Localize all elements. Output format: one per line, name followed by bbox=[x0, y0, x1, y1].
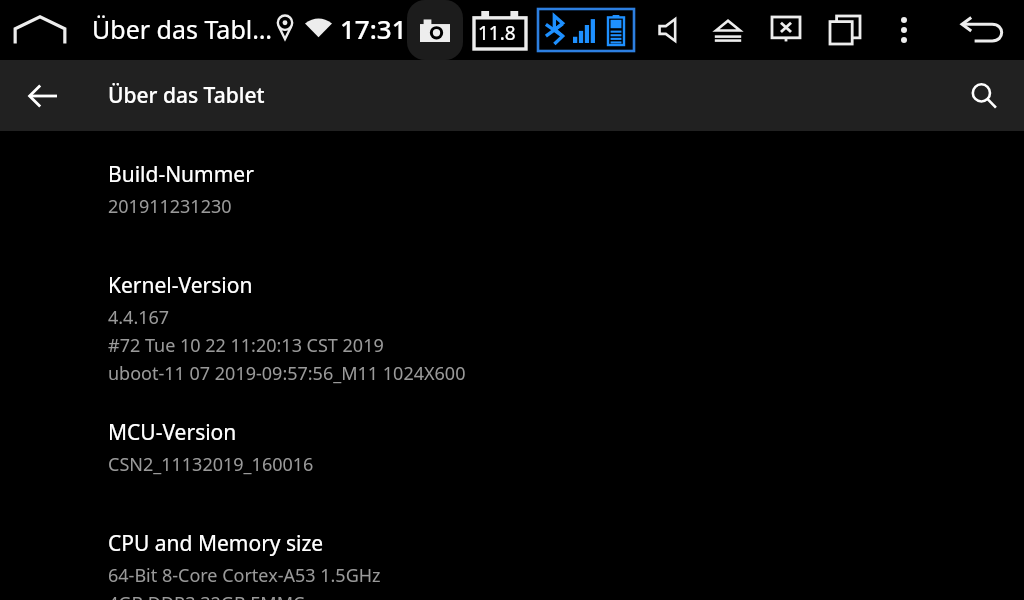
button[interactable]: Kernel-Version bbox=[0, 271, 1024, 386]
staticText: Über das Tabl… bbox=[92, 12, 272, 46]
button[interactable]: Eject bbox=[700, 0, 756, 60]
staticText: MCU-Version bbox=[108, 418, 237, 447]
staticText: CPU and Memory size bbox=[108, 529, 324, 558]
button[interactable]: Back bbox=[952, 0, 1014, 60]
staticText: #72 Tue 10 22 11:20:13 CST 2019 bbox=[108, 333, 384, 358]
staticText: Über das Tablet bbox=[108, 81, 265, 110]
button[interactable]: More options bbox=[882, 0, 926, 60]
staticText: 201911231230 bbox=[108, 194, 232, 219]
button[interactable]: Close bbox=[760, 0, 812, 60]
staticText: uboot-11 07 2019-09:57:56_M11 1024X600 bbox=[108, 361, 466, 386]
staticText: Kernel-Version bbox=[108, 271, 253, 300]
button[interactable]: Screenshot bbox=[407, 0, 463, 60]
staticText: Build-Nummer bbox=[108, 160, 254, 189]
staticText: 64-Bit 8-Core Cortex-A53 1.5GHz bbox=[108, 563, 381, 588]
button[interactable]: CPU and Memory size bbox=[0, 529, 1024, 600]
button[interactable]: Build-Nummer bbox=[0, 160, 1024, 219]
button[interactable]: Navigate up bbox=[18, 60, 68, 131]
button[interactable]: Recent apps bbox=[818, 0, 872, 60]
button[interactable]: MCU-Version bbox=[0, 418, 1024, 477]
staticText: 11.8 bbox=[478, 20, 516, 46]
button[interactable]: Search bbox=[958, 60, 1010, 131]
button[interactable]: Volume bbox=[645, 0, 697, 60]
button[interactable]: Home bbox=[8, 0, 72, 60]
staticText: 4GB DDR3 32GB EMMC bbox=[108, 591, 305, 600]
staticText: CSN2_11132019_160016 bbox=[108, 452, 314, 477]
staticText: 4.4.167 bbox=[108, 305, 170, 330]
staticText: 17:31 bbox=[340, 11, 407, 46]
